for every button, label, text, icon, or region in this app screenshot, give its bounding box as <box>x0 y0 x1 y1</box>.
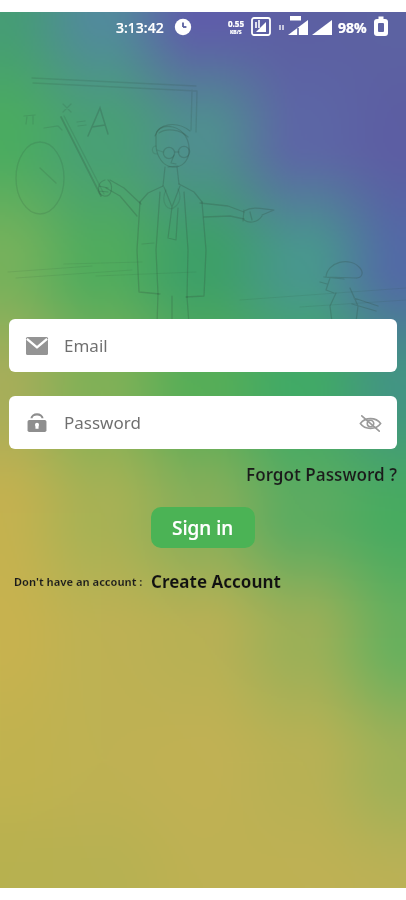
button[interactable]: Password <box>9 396 397 449</box>
button[interactable]: Show password <box>357 410 383 436</box>
button[interactable]: Forgot Password ? <box>246 463 397 486</box>
button[interactable]: Email <box>9 319 397 372</box>
button[interactable]: Sign in <box>151 507 255 548</box>
staticText: 0.55 <box>228 18 244 29</box>
staticText: Password <box>64 411 141 434</box>
button[interactable]: Create Account <box>151 570 281 593</box>
staticText: 98% <box>338 18 367 37</box>
staticText: 3:13:42 <box>116 18 164 37</box>
staticText: Sign in <box>172 515 234 541</box>
staticText: Don't have an account : <box>14 574 143 589</box>
staticText: KB/S <box>230 29 242 36</box>
staticText: Email <box>64 334 108 357</box>
